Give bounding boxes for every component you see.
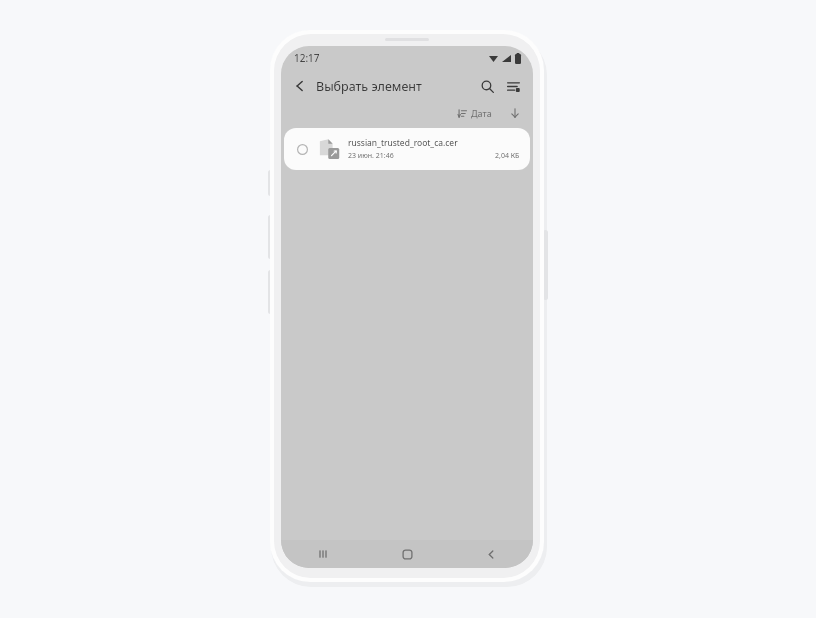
button[interactable]: Sort direction descending xyxy=(507,105,523,121)
button[interactable]: Select item xyxy=(284,128,530,170)
button[interactable]: Home xyxy=(365,540,449,568)
button[interactable]: Recents xyxy=(281,540,365,568)
staticText: Выбрать элемент xyxy=(316,78,422,95)
button[interactable]: Дата xyxy=(455,105,495,121)
button[interactable]: Search xyxy=(475,74,499,98)
staticText: 2,04 КБ xyxy=(495,151,520,161)
staticText: russian_trusted_root_ca.cer xyxy=(348,137,458,149)
button[interactable]: Back xyxy=(449,540,533,568)
button[interactable]: Back xyxy=(289,75,311,97)
staticText: 23 июн. 21:46 xyxy=(348,151,394,161)
staticText: Дата xyxy=(471,107,492,119)
button[interactable]: Select item xyxy=(292,139,312,159)
button[interactable]: Sort options xyxy=(501,74,525,98)
staticText: 12:17 xyxy=(294,51,320,65)
